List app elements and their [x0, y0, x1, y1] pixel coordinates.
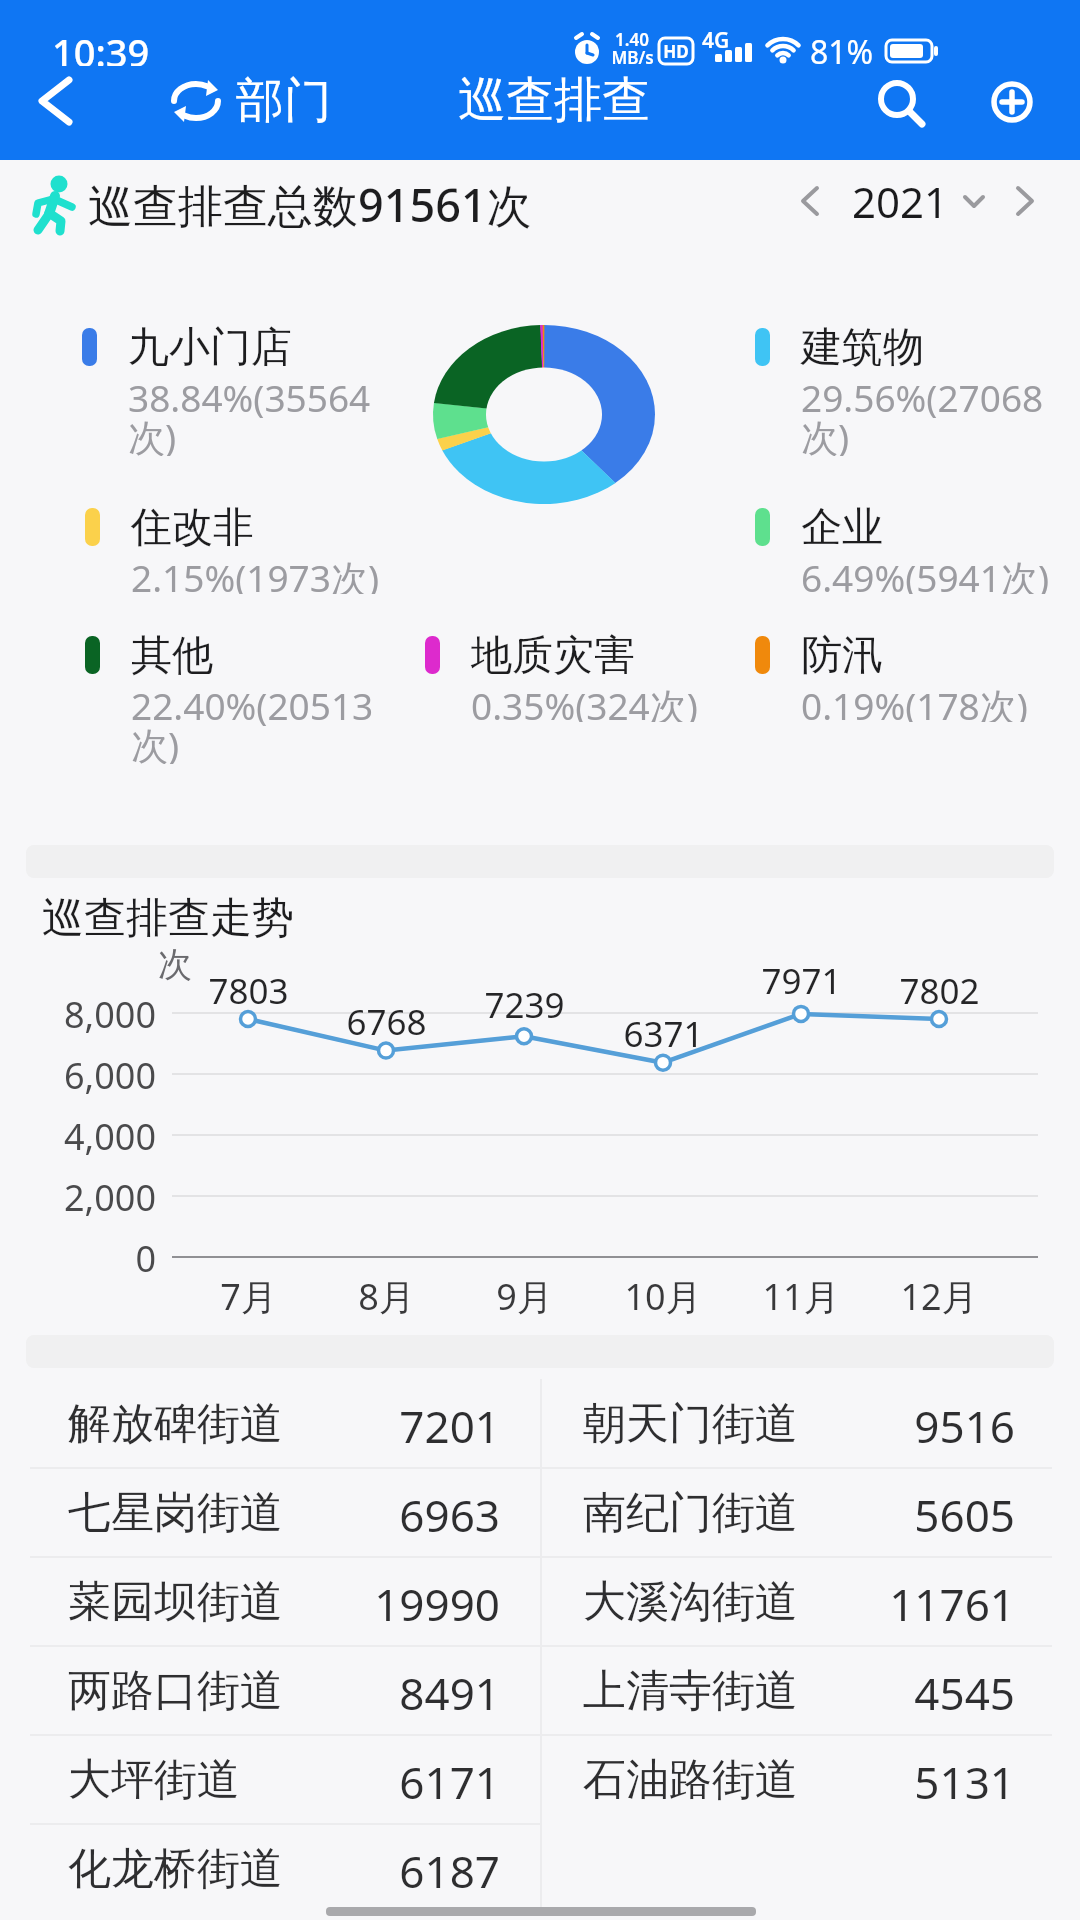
staticText: 大坪街道	[68, 1753, 240, 1807]
staticText: 两路口街道	[68, 1664, 283, 1718]
button[interactable]: 2021	[790, 170, 1060, 232]
staticText: 6.49%(5941次)	[801, 552, 1050, 594]
staticText: 巡查排查走势	[42, 892, 294, 944]
staticText: 19990	[374, 1574, 500, 1630]
staticText: 7201	[399, 1396, 500, 1452]
staticText: 12月	[900, 1272, 978, 1320]
button[interactable]: 部门	[160, 66, 350, 136]
button[interactable]: 解放碑街道	[30, 1379, 540, 1468]
staticText: 8月	[358, 1272, 415, 1320]
staticText: 菜园坝街道	[68, 1575, 283, 1629]
button[interactable]: 大坪街道	[30, 1735, 540, 1824]
staticText: 7月	[220, 1272, 277, 1320]
staticText: 2,000	[63, 1173, 156, 1219]
staticText: 朝天门街道	[583, 1397, 798, 1451]
staticText: 解放碑街道	[68, 1397, 283, 1451]
staticText: 4G	[702, 26, 730, 52]
staticText: 10:39	[52, 26, 150, 66]
staticText: 大溪沟街道	[583, 1575, 798, 1629]
button[interactable]: 七星岗街道	[30, 1468, 540, 1557]
staticText: 住改非	[131, 502, 254, 554]
staticText: 七星岗街道	[68, 1486, 283, 1540]
button[interactable]: 朝天门街道	[542, 1379, 1052, 1468]
staticText: HD	[663, 40, 689, 63]
staticText: 8491	[399, 1663, 500, 1719]
staticText: 7803	[208, 967, 289, 1011]
staticText: 0	[135, 1234, 156, 1280]
staticText: 6,000	[63, 1051, 156, 1097]
button[interactable]	[20, 70, 90, 132]
staticText: 8,000	[63, 990, 156, 1036]
staticText: 部门	[236, 71, 332, 131]
button[interactable]	[862, 66, 938, 136]
staticText: 0.35%(324次)	[471, 680, 698, 722]
staticText: 巡查排查总数91561次	[88, 174, 532, 230]
staticText: 0.19%(178次)	[801, 680, 1028, 722]
button[interactable]	[976, 66, 1048, 136]
staticText: 9516	[914, 1396, 1015, 1452]
button[interactable]: 石油路街道	[542, 1735, 1052, 1824]
staticText: 2021	[852, 173, 949, 230]
button[interactable]: 菜园坝街道	[30, 1557, 540, 1646]
staticText: 7971	[761, 957, 842, 1001]
staticText: 南纪门街道	[583, 1486, 798, 1540]
button[interactable]: 化龙桥街道	[30, 1824, 540, 1913]
staticText: 5131	[914, 1752, 1015, 1808]
staticText: 次	[158, 943, 192, 986]
staticText: 11月	[762, 1272, 840, 1320]
staticText: 石油路街道	[583, 1753, 798, 1807]
staticText: 11761	[889, 1574, 1015, 1630]
button[interactable]: 两路口街道	[30, 1646, 540, 1735]
button[interactable]: 上清寺街道	[542, 1646, 1052, 1735]
staticText: 化龙桥街道	[68, 1842, 283, 1896]
button[interactable]: 南纪门街道	[542, 1468, 1052, 1557]
staticText: 1.40	[615, 28, 649, 50]
staticText: 10月	[624, 1272, 702, 1320]
button[interactable]: 大溪沟街道	[542, 1557, 1052, 1646]
staticText: 其他	[131, 630, 213, 682]
staticText: 上清寺街道	[583, 1664, 798, 1718]
staticText: 建筑物	[801, 322, 924, 374]
staticText: 9月	[496, 1272, 553, 1320]
staticText: 4,000	[63, 1112, 156, 1158]
staticText: 22.40%(20513 次)	[131, 680, 374, 764]
staticText: 地质灾害	[471, 630, 635, 682]
staticText: 38.84%(35564 次)	[128, 372, 371, 456]
staticText: 九小门店	[128, 322, 292, 374]
staticText: 4545	[914, 1663, 1015, 1719]
staticText: 6187	[399, 1841, 500, 1897]
staticText: 81%	[810, 30, 874, 72]
staticText: 29.56%(27068 次)	[801, 372, 1044, 456]
staticText: 6768	[346, 998, 427, 1042]
staticText: 6371	[623, 1010, 704, 1054]
staticText: 7802	[899, 967, 980, 1011]
staticText: 企业	[801, 502, 883, 554]
staticText: 6171	[399, 1752, 500, 1808]
staticText: MB/s	[611, 46, 654, 68]
staticText: 6963	[399, 1485, 500, 1541]
staticText: 7239	[484, 981, 565, 1025]
staticText: 巡查排查	[458, 70, 650, 130]
staticText: 2.15%(1973次)	[131, 552, 380, 594]
staticText: 5605	[914, 1485, 1015, 1541]
staticText: 防汛	[801, 630, 883, 682]
